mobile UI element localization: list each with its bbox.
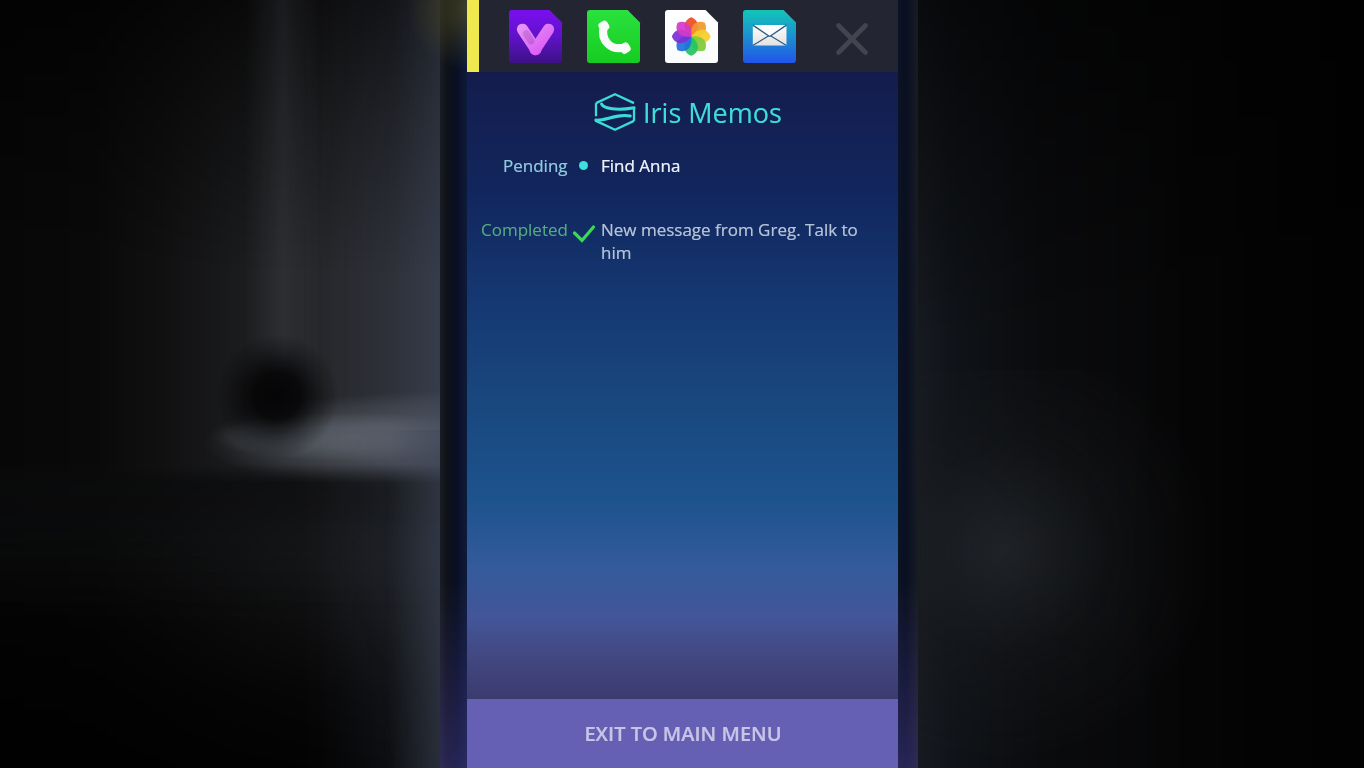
staticText: Pending <box>503 154 568 177</box>
staticText: New message from Greg. Talk to him <box>601 218 867 264</box>
staticText: Iris Memos <box>643 94 782 131</box>
button[interactable]: Vivaldi <box>509 10 562 63</box>
button[interactable]: Photos <box>665 10 718 63</box>
button[interactable]: Close <box>830 17 874 61</box>
button[interactable]: Pending <box>467 150 898 180</box>
button[interactable]: EXIT TO MAIN MENU <box>467 699 898 768</box>
button[interactable]: Iris Memos <box>595 92 782 132</box>
staticText: Completed <box>481 218 568 241</box>
staticText: Find Anna <box>601 154 681 177</box>
button[interactable]: Completed <box>467 214 898 268</box>
staticText: EXIT TO MAIN MENU <box>584 720 782 747</box>
button[interactable]: Mail <box>743 10 796 63</box>
button[interactable]: Phone <box>587 10 640 63</box>
